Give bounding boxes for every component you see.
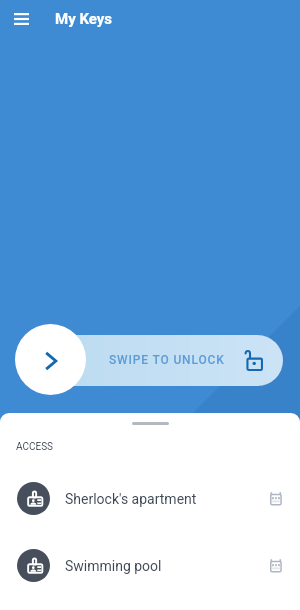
button[interactable]: Schedule bbox=[264, 554, 288, 578]
button[interactable]: Unlock bbox=[15, 324, 86, 395]
button[interactable]: Swimming pool bbox=[0, 549, 300, 582]
staticText: My Keys bbox=[55, 10, 113, 28]
staticText: Swimming pool bbox=[65, 558, 264, 574]
button[interactable]: Swipe to unlock bbox=[40, 335, 283, 386]
staticText: SWIPE TO UNLOCK bbox=[109, 353, 225, 367]
staticText: Sherlock's apartment bbox=[65, 491, 264, 507]
button[interactable]: Sherlock's apartment bbox=[0, 482, 300, 515]
staticText: ACCESS bbox=[16, 441, 54, 453]
button[interactable]: Schedule bbox=[264, 487, 288, 511]
button[interactable]: Menu bbox=[0, 0, 42, 37]
